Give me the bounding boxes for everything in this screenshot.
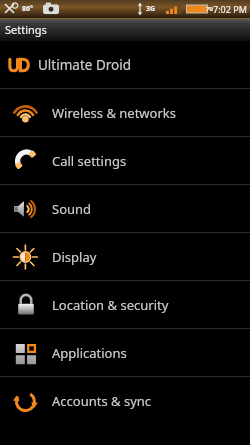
staticText: 3G [146, 4, 156, 14]
button[interactable]: Display [0, 233, 250, 280]
staticText: Call settings [52, 152, 127, 170]
staticText: Sound [52, 200, 92, 218]
staticText: Ultimate Droid [38, 56, 132, 74]
staticText: 7:02 PM [213, 3, 247, 15]
staticText: Location & security [52, 296, 169, 314]
button[interactable]: Ultimate Droid [0, 41, 250, 88]
staticText: Settings [5, 22, 47, 37]
button[interactable]: Location & security [0, 281, 250, 328]
button[interactable]: Wireless & networks [0, 89, 250, 136]
staticText: Wireless & networks [52, 104, 176, 122]
staticText: 70 [206, 5, 213, 13]
button[interactable]: Sound [0, 185, 250, 232]
staticText: Display [52, 248, 97, 266]
staticText: Applications [52, 344, 127, 362]
button[interactable]: Call settings [0, 137, 250, 184]
staticText: 86° [22, 4, 33, 14]
button[interactable]: Accounts & sync [0, 377, 250, 424]
staticText: Accounts & sync [52, 392, 152, 410]
button[interactable]: Applications [0, 329, 250, 376]
